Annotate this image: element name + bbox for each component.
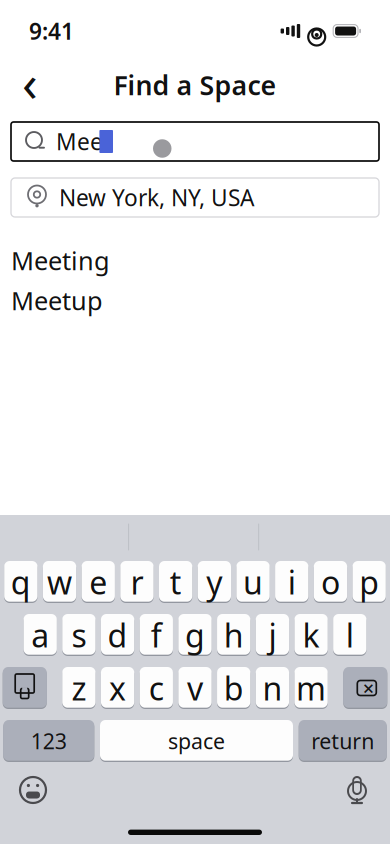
button[interactable]: y (198, 561, 231, 603)
button[interactable]: s (62, 614, 95, 656)
button[interactable]: b (217, 667, 250, 709)
staticText: o (321, 561, 340, 603)
button[interactable]: New York, NY, USA (11, 178, 379, 217)
staticText: w (47, 561, 72, 603)
button[interactable]: 123 (3, 720, 94, 762)
button[interactable]: m (294, 667, 328, 709)
button[interactable]: p (352, 561, 386, 603)
staticText: 123 (31, 727, 67, 755)
button[interactable]: q (4, 561, 37, 603)
staticText: New York, NY, USA (59, 182, 254, 212)
button[interactable]: Shift (3, 667, 47, 709)
button[interactable]: r (120, 561, 154, 603)
button[interactable]: Dictate (335, 768, 379, 812)
staticText: a (31, 614, 49, 656)
staticText: return (311, 727, 374, 755)
button[interactable]: Delete (343, 667, 387, 709)
button[interactable]: n (256, 667, 289, 709)
button[interactable]: d (101, 614, 134, 656)
staticText: Mee (56, 126, 103, 156)
button[interactable]: g (178, 614, 212, 656)
button[interactable]: t (159, 561, 192, 603)
staticText: g (185, 614, 205, 656)
button[interactable]: Back (6, 61, 54, 109)
staticText: ‹ (22, 48, 38, 116)
staticText: q (11, 561, 31, 603)
button[interactable]: space (100, 720, 293, 762)
staticText: t (170, 561, 182, 603)
staticText: i (288, 561, 296, 603)
staticText: s (71, 614, 86, 656)
button[interactable]: f (140, 614, 173, 656)
staticText: v (187, 667, 203, 709)
button[interactable]: Meetup (0, 285, 390, 316)
staticText: space (168, 727, 225, 755)
staticText: × (363, 675, 374, 701)
button[interactable]: e (82, 561, 115, 603)
staticText: Meetup (11, 284, 103, 317)
button[interactable]: o (314, 561, 347, 603)
staticText: Meeting (11, 244, 110, 277)
staticText: u (243, 561, 263, 603)
button[interactable]: w (43, 561, 76, 603)
button[interactable]: a (24, 614, 57, 656)
button[interactable]: u (236, 561, 270, 603)
button[interactable]: Meeting (0, 245, 390, 276)
button[interactable]: l (333, 614, 366, 656)
staticText: f (151, 614, 162, 656)
staticText: l (346, 614, 354, 656)
button[interactable]: z (62, 667, 96, 709)
staticText: k (303, 614, 320, 656)
staticText: 9:41 (29, 16, 74, 46)
staticText: h (224, 614, 244, 656)
button[interactable]: Mee (11, 122, 379, 161)
button[interactable]: j (256, 614, 289, 656)
staticText: r (130, 561, 143, 603)
button[interactable]: c (140, 667, 173, 709)
button[interactable]: i (275, 561, 308, 603)
button[interactable]: h (217, 614, 250, 656)
button[interactable]: v (178, 667, 212, 709)
staticText: c (149, 667, 164, 709)
staticText: e (89, 561, 107, 603)
button[interactable]: Emoji (11, 768, 55, 812)
button[interactable]: return (299, 720, 387, 762)
button[interactable]: k (294, 614, 328, 656)
staticText: p (359, 561, 379, 603)
staticText: z (71, 667, 86, 709)
staticText: y (206, 561, 222, 603)
staticText: Find a Space (113, 67, 276, 103)
staticText: d (108, 614, 128, 656)
staticText: m (296, 667, 326, 709)
button[interactable]: x (101, 667, 134, 709)
staticText: b (224, 667, 244, 709)
staticText: n (262, 667, 282, 709)
staticText: j (268, 614, 276, 656)
staticText: x (109, 667, 126, 709)
